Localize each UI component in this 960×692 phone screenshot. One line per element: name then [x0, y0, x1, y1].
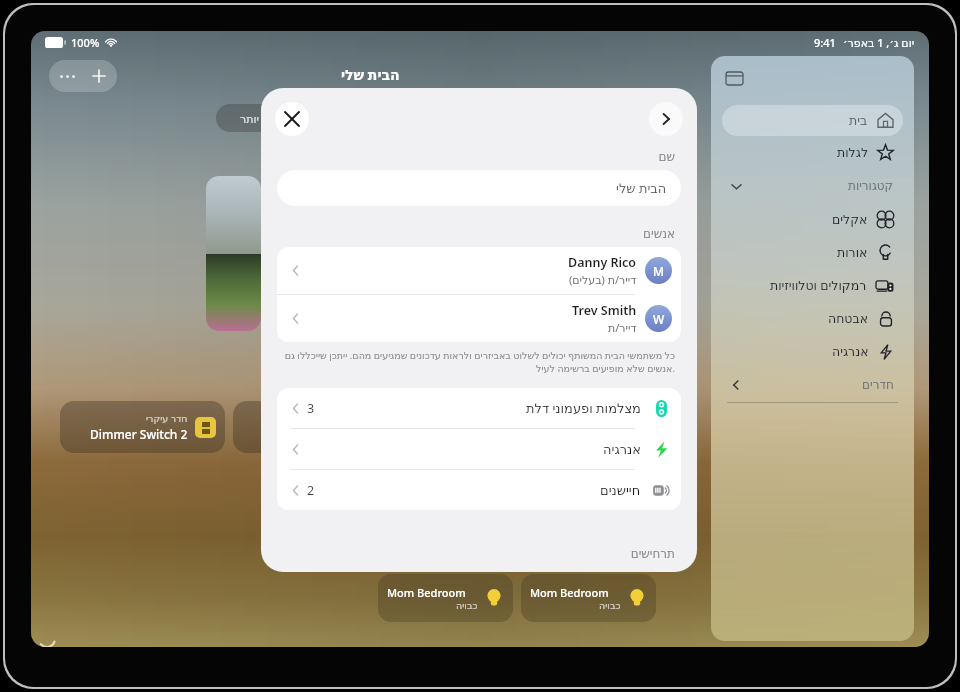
staticText: Trev Smith — [572, 302, 637, 319]
button[interactable]: Close — [275, 102, 309, 136]
staticText: קטגוריות — [848, 179, 894, 193]
staticText: Mom Bedroom Ac... — [387, 585, 478, 600]
staticText: הבית שלי — [341, 65, 400, 84]
staticText: 100% — [71, 35, 100, 50]
staticText: לגלות — [837, 145, 868, 160]
button[interactable]: אורות — [711, 236, 894, 269]
staticText: M — [653, 263, 665, 279]
staticText: אקלים — [832, 212, 868, 227]
staticText: Danny Rico — [568, 254, 637, 271]
button[interactable]: חדר עיקרי — [242, 401, 389, 453]
button[interactable]: Mom Bedroom Ac... — [530, 574, 647, 622]
button[interactable]: Mom Bedroom Ac... — [387, 574, 504, 622]
button[interactable]: לגלות — [711, 136, 894, 169]
staticText: אנשים — [261, 227, 675, 241]
staticText: מצלמות ופעמוני דלת — [526, 399, 641, 417]
staticText: חדרים — [862, 378, 894, 392]
button[interactable]: אנרגיה — [277, 429, 672, 469]
button[interactable]: More — [52, 61, 82, 91]
staticText: קי יותר — [240, 111, 273, 126]
button[interactable]: חדר עיקרי — [69, 401, 216, 453]
staticText: 3 — [307, 400, 315, 417]
staticText: בית — [849, 113, 868, 128]
staticText: יום ג׳, 1 באפר׳ — [843, 35, 915, 50]
staticText: דייר/ת — [608, 320, 637, 335]
button[interactable]: Next — [649, 102, 683, 136]
button[interactable]: אנרגיה — [711, 335, 894, 368]
staticText: דייר/ת (בעלים) — [569, 272, 637, 287]
button[interactable]: Trev Smith — [277, 295, 672, 342]
staticText: אורות — [837, 245, 868, 260]
button[interactable]: בית — [722, 105, 894, 136]
button[interactable]: אבטחה — [711, 302, 894, 335]
button[interactable]: קי יותר — [216, 104, 296, 132]
staticText: אבטחה — [828, 311, 869, 326]
staticText: אנרגיה — [832, 344, 869, 359]
button[interactable]: הבית שלי — [277, 170, 667, 206]
staticText: אנרגיה — [603, 442, 641, 457]
staticText: הבית שלי — [616, 179, 667, 197]
staticText: חדר עיקרי — [146, 412, 188, 425]
staticText: שם — [261, 150, 675, 164]
button[interactable]: Add — [84, 61, 114, 91]
staticText: Mom Bedroom Ac... — [530, 585, 621, 600]
staticText: כבויה — [456, 600, 478, 611]
button[interactable]: 2 — [277, 470, 672, 510]
staticText: Dimmer Switch 2 — [90, 426, 188, 442]
staticText: 9:41 — [814, 35, 836, 50]
staticText: תרחישים — [261, 547, 675, 561]
staticText: כל משתמשי הבית המשותף יכולים לשלוט באביז… — [283, 349, 675, 375]
staticText: 2 — [307, 482, 315, 499]
button[interactable]: חדרים — [731, 368, 894, 402]
staticText: Dimmer Switch 3 — [263, 426, 361, 442]
staticText: W — [653, 311, 665, 327]
staticText: כבויה — [599, 600, 621, 611]
button[interactable]: 3 — [277, 388, 672, 428]
button[interactable]: רמקולים וטלוויזיות — [711, 269, 894, 302]
button[interactable]: Toggle sidebar — [721, 65, 747, 91]
staticText: חיישנים — [600, 483, 641, 498]
staticText: רמקולים וטלוויזיות — [770, 277, 867, 294]
button[interactable]: אקלים — [711, 203, 894, 236]
button[interactable]: Danny Rico — [277, 247, 672, 294]
